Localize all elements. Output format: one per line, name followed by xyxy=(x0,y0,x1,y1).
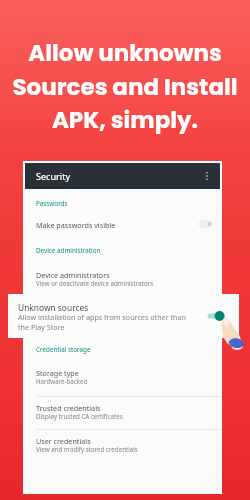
button[interactable]: Device administrators xyxy=(25,266,220,290)
staticText: Unknown sources xyxy=(18,302,89,313)
staticText: User credentials xyxy=(36,436,91,446)
staticText: Device administration xyxy=(36,246,101,255)
staticText: Security xyxy=(36,170,71,182)
staticText: View or deactivate device administrators xyxy=(36,279,154,287)
staticText: Credential storage xyxy=(36,345,91,354)
staticText: Allow unknowns Sources and Install APK, … xyxy=(0,37,250,136)
staticText: Device administrators xyxy=(36,270,110,280)
staticText: Hardware-backed xyxy=(36,377,88,385)
staticText: Storage type xyxy=(36,368,79,378)
button[interactable]: Make passwords visible xyxy=(25,214,220,234)
staticText: Display trusted CA certificates xyxy=(36,412,123,420)
staticText: Trusted credentials xyxy=(36,403,101,413)
staticText: Passwords xyxy=(36,199,68,208)
staticText: View and modify stored credentials xyxy=(36,445,138,453)
button[interactable]: More options xyxy=(199,168,215,184)
staticText: Make passwords visible xyxy=(36,220,116,230)
button[interactable]: Storage type xyxy=(25,364,220,388)
staticText: Allow installation of apps from sources … xyxy=(18,312,187,332)
button[interactable]: Unknown sources xyxy=(8,294,239,338)
button[interactable]: Trusted credentials xyxy=(25,399,220,423)
button[interactable]: User credentials xyxy=(25,432,220,456)
